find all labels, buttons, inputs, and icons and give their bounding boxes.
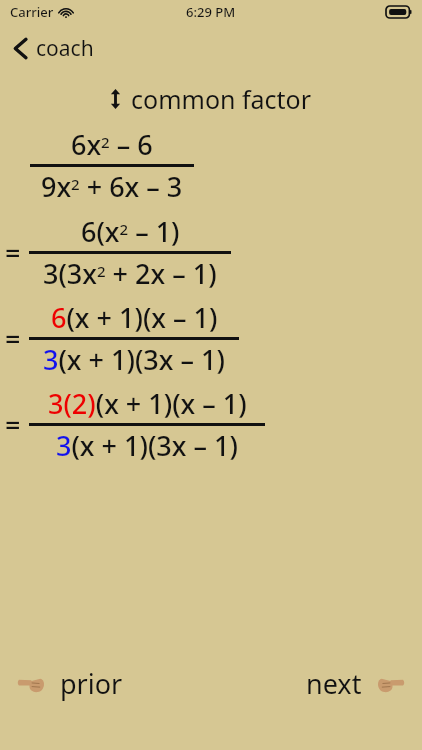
- staticText: 9x2 + 6x – 3: [41, 168, 183, 205]
- staticText: 3(3x2 + 2x – 1): [43, 255, 217, 292]
- staticText: 3(x + 1)(3x – 1): [43, 341, 225, 378]
- staticText: common factor: [131, 82, 312, 116]
- button[interactable]: next: [298, 659, 412, 708]
- staticText: 3(2)(x + 1)(x – 1): [48, 385, 247, 422]
- staticText: next: [306, 665, 362, 702]
- staticText: 6:29 PM: [186, 3, 236, 21]
- button[interactable]: common factor: [104, 80, 318, 118]
- staticText: Carrier: [10, 3, 54, 21]
- staticText: 6(x + 1)(x – 1): [51, 299, 218, 336]
- staticText: prior: [60, 665, 123, 702]
- staticText: 6x2 – 6: [71, 126, 153, 163]
- staticText: =: [5, 320, 21, 357]
- staticText: 3(x + 1)(3x – 1): [56, 427, 238, 464]
- button[interactable]: prior: [10, 659, 131, 708]
- staticText: =: [5, 234, 21, 271]
- button[interactable]: coach: [8, 30, 100, 67]
- staticText: coach: [36, 34, 94, 63]
- staticText: =: [5, 406, 21, 443]
- staticText: 6(x2 – 1): [81, 213, 180, 250]
